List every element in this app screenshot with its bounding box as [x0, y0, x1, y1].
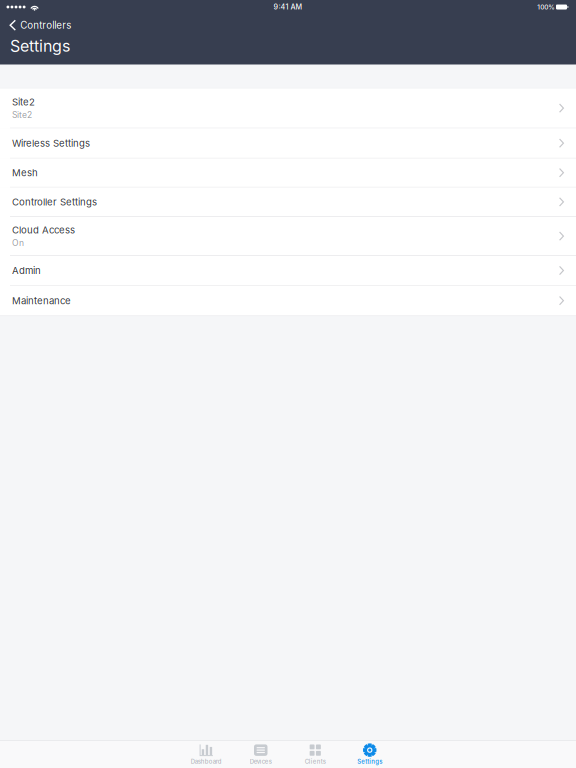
staticText: Controllers — [20, 19, 71, 31]
staticText: Wireless Settings — [12, 137, 90, 149]
button[interactable]: Site2 — [0, 88, 576, 128]
staticText: Settings — [10, 36, 70, 56]
button[interactable]: Maintenance — [0, 286, 576, 315]
staticText: Devices — [250, 758, 272, 765]
staticText: Clients — [305, 758, 326, 765]
staticText: 100% — [537, 3, 554, 11]
button[interactable]: Mesh — [0, 159, 576, 188]
staticText: Dashboard — [191, 758, 222, 765]
button[interactable]: Devices — [233, 741, 288, 768]
button[interactable]: Dashboard — [179, 741, 233, 768]
button[interactable]: Clients — [288, 741, 342, 768]
button[interactable]: Admin — [0, 256, 576, 286]
staticText: Maintenance — [12, 295, 71, 306]
staticText: Mesh — [12, 167, 38, 178]
button[interactable]: Controllers — [0, 15, 576, 35]
staticText: Site2 — [12, 96, 35, 108]
button[interactable]: Controller Settings — [0, 188, 576, 217]
staticText: 9:41 AM — [273, 3, 302, 11]
button[interactable]: Settings — [342, 741, 397, 768]
button[interactable]: Cloud Access — [0, 217, 576, 256]
staticText: On — [12, 238, 24, 248]
staticText: Admin — [12, 265, 41, 276]
staticText: Settings — [357, 758, 382, 765]
staticText: Cloud Access — [12, 224, 75, 236]
staticText: Site2 — [12, 110, 32, 120]
staticText: Controller Settings — [12, 196, 97, 208]
button[interactable]: Wireless Settings — [0, 128, 576, 159]
